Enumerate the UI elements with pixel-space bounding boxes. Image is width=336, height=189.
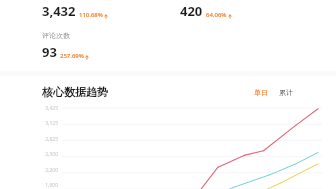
staticText: 累计 xyxy=(279,88,293,97)
staticText: 64.06% xyxy=(206,11,227,19)
staticText: 评论次数 xyxy=(42,31,70,40)
button[interactable]: 420 xyxy=(180,2,232,20)
staticText: 1,900 xyxy=(34,182,58,189)
staticText: 2,825 xyxy=(34,136,58,143)
staticText: 核心数据趋势 xyxy=(42,85,108,99)
staticText: 257.69% xyxy=(60,52,84,60)
staticText: 110.68% xyxy=(79,11,103,19)
staticText: 2,200 xyxy=(34,167,58,174)
staticText: 3,125 xyxy=(34,120,58,127)
staticText: 3,425 xyxy=(34,105,58,112)
staticText: 93 xyxy=(42,43,57,61)
staticText: 单日 xyxy=(254,88,268,97)
staticText: 3,432 xyxy=(42,2,76,20)
staticText: 2,500 xyxy=(34,151,58,158)
button[interactable]: 3,432 xyxy=(42,2,180,20)
staticText: 420 xyxy=(180,2,203,20)
button[interactable]: 单日 xyxy=(251,86,271,99)
button[interactable]: 累计 xyxy=(276,86,296,99)
button[interactable]: 评论次数 xyxy=(42,31,89,61)
